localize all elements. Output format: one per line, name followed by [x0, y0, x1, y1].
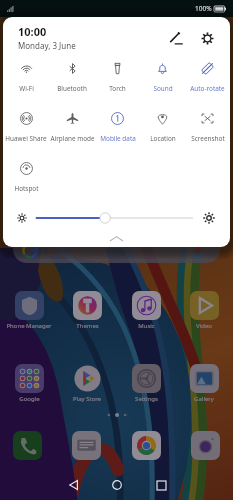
staticText: Sound	[153, 84, 173, 93]
button[interactable]: Wi-Fi	[3, 52, 49, 102]
staticText: 100%	[195, 4, 212, 13]
button[interactable]: Location	[140, 102, 185, 152]
button[interactable]: Themes	[61, 291, 113, 330]
staticText: Auto-rotate	[190, 84, 225, 93]
staticText: Monday, 3 June	[18, 40, 76, 51]
staticText: Play Store	[73, 395, 101, 403]
staticText: Gallery	[194, 395, 214, 403]
button[interactable]: Edit	[164, 26, 188, 50]
button[interactable]: Video	[178, 291, 230, 330]
button[interactable]: Search	[13, 234, 220, 263]
staticText: Settings	[135, 395, 158, 403]
button[interactable]: Play Store	[61, 364, 113, 403]
staticText: Torch	[109, 84, 126, 93]
button[interactable]: Huawei Share	[3, 102, 49, 152]
staticText: Screenshot	[191, 134, 225, 143]
button[interactable]: Hotspot	[3, 152, 49, 202]
staticText: Google	[19, 395, 40, 403]
staticText: Location	[150, 134, 176, 143]
button[interactable]: Auto-rotate	[185, 52, 230, 102]
staticText: 10:00	[18, 24, 47, 39]
button[interactable]: Settings	[195, 26, 219, 50]
button[interactable]: Settings	[120, 364, 172, 403]
button[interactable]: Messages	[72, 431, 101, 460]
button[interactable]: Chrome	[132, 431, 161, 460]
button[interactable]: Airplane mode	[49, 102, 95, 152]
staticText: Themes	[76, 322, 99, 330]
button[interactable]: Sound	[140, 52, 185, 102]
staticText: Airplane mode	[50, 134, 95, 143]
staticText: Huawei Share	[5, 134, 47, 143]
button[interactable]: Phone Manager	[3, 291, 55, 330]
button[interactable]: Collapse	[3, 231, 230, 245]
staticText: Wi-Fi	[19, 84, 34, 93]
button[interactable]: Recents	[146, 470, 176, 500]
button[interactable]: Music	[120, 291, 172, 330]
button[interactable]: Camera	[191, 431, 220, 460]
button[interactable]: Mobile data	[95, 102, 140, 152]
staticText: Phone Manager	[6, 322, 52, 330]
button[interactable]: Google	[3, 364, 55, 403]
staticText: Mobile data	[100, 134, 136, 143]
staticText: Video	[196, 322, 212, 330]
button[interactable]: Bluetooth	[49, 52, 95, 102]
button[interactable]: Brightness	[36, 211, 193, 225]
button[interactable]: Gallery	[178, 364, 230, 403]
button[interactable]: Phone	[13, 431, 42, 460]
button[interactable]: Home	[102, 470, 132, 500]
staticText: Bluetooth	[57, 84, 87, 93]
button[interactable]: Screenshot	[185, 102, 230, 152]
staticText: Music	[138, 322, 155, 330]
button[interactable]: Back	[58, 470, 88, 500]
button[interactable]: Torch	[95, 52, 140, 102]
staticText: Hotspot	[14, 184, 39, 193]
